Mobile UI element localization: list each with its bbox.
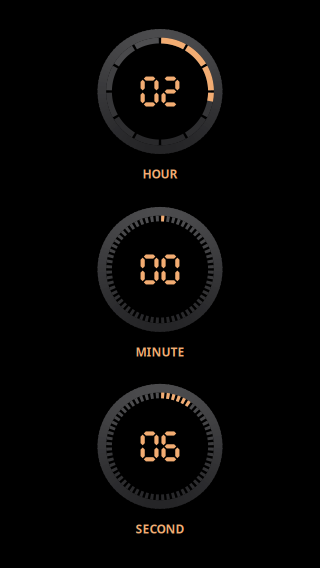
staticText: HOUR <box>142 166 177 182</box>
button[interactable]: SECOND <box>97 384 222 537</box>
staticText: SECOND <box>135 521 184 537</box>
button[interactable]: HOUR <box>97 29 222 182</box>
staticText: MINUTE <box>135 344 184 360</box>
button[interactable]: MINUTE <box>97 207 222 360</box>
